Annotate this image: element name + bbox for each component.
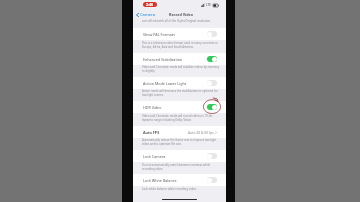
other: Disabled [207,153,217,159]
button[interactable]: Show PAL Formats [133,28,226,40]
button[interactable]: Auto FPS [133,126,226,138]
staticText: Do not automatically switch between came… [142,163,211,171]
button[interactable]: Action Mode Lower Light [133,77,226,89]
staticText: Lock white balance while recording video… [142,187,197,191]
other: Disabled [207,80,217,86]
staticText: Video and Cinematic mode will record vid… [142,114,213,122]
staticText: Lock Camera [143,154,166,159]
staticText: Auto 30 & 60 fps [188,130,214,135]
staticText: This is a television video format used i… [142,41,218,49]
staticText: HDR Video [143,105,162,110]
staticText: Camera [140,12,155,18]
staticText: Lock White Balance [143,178,177,183]
other: Disabled [207,177,217,183]
other: Disabled [207,31,217,37]
button[interactable]: Lock White Balance [133,174,226,186]
staticText: Show PAL Formats [143,32,175,37]
other: Enabled [207,104,217,110]
staticText: Auto FPS [143,130,160,135]
staticText: 2:46 [146,2,154,7]
staticText: can still edit with all of the Styles/Or… [142,19,211,23]
staticText: Action Mode Lower Light [143,81,187,86]
button[interactable]: Lock Camera [133,150,226,162]
staticText: Action mode will decrease the stabilizat… [142,89,218,97]
other: Enabled [207,56,217,62]
staticText: Video and Cinematic mode will stabilize … [142,65,219,73]
staticText: Automatically reduce the frame rate to i… [142,138,217,146]
button[interactable]: Camera [136,12,155,18]
button[interactable]: Enhanced Stabilization [133,53,226,65]
staticText: LTE [206,3,212,7]
button[interactable]: HDR Video [133,101,226,113]
staticText: Record Video [169,12,194,17]
staticText: Enhanced Stabilization [143,57,183,62]
